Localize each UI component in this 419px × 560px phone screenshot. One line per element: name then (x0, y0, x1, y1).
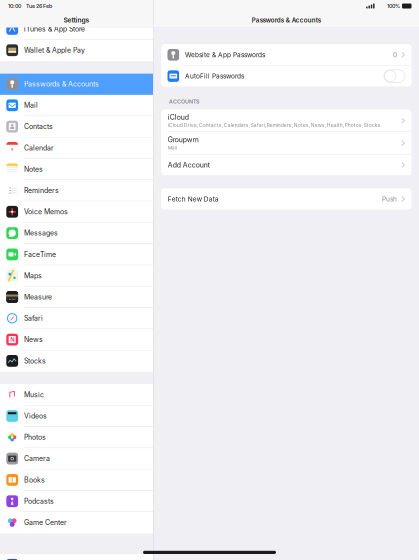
button[interactable]: Game Center (0, 512, 153, 533)
staticText: FaceTime (24, 250, 56, 259)
staticText: Website & App Passwords (185, 51, 265, 59)
button[interactable]: Podcasts (0, 491, 153, 512)
button[interactable]: iTunes & App Store (0, 18, 153, 40)
staticText: Add Account (168, 161, 210, 169)
staticText: Passwords & Accounts (252, 16, 321, 24)
staticText: iCloud Drive, Contacts, Calendars, Safar… (168, 122, 381, 128)
staticText: Messages (24, 229, 58, 237)
staticText: Music (24, 390, 44, 399)
staticText: News (24, 335, 43, 344)
staticText: Photos (24, 433, 46, 441)
staticText: Podcasts (24, 497, 54, 505)
staticText: Game Center (24, 518, 67, 527)
staticText: Fetch New Data (168, 195, 219, 203)
staticText: Videos (24, 412, 47, 420)
staticText: Safari (24, 314, 43, 322)
staticText: Books (24, 476, 45, 484)
staticText: Maps (24, 271, 42, 280)
button[interactable]: Stocks (0, 350, 153, 372)
staticText: Camera (24, 454, 50, 463)
staticText: Push (382, 195, 397, 203)
staticText: iCloud (168, 113, 189, 121)
staticText: Mail (24, 101, 38, 109)
staticText: 4 (11, 147, 14, 152)
staticText: Groupwm (168, 135, 199, 144)
staticText: N (10, 336, 14, 343)
staticText: Settings (63, 16, 89, 24)
staticText: Passwords & Accounts (24, 80, 99, 88)
button[interactable]: 4 (0, 137, 153, 159)
staticText: Calendar (24, 144, 54, 152)
staticText: Measure (24, 293, 52, 301)
staticText: Wallet & Apple Pay (24, 46, 85, 54)
staticText: 100% (387, 3, 400, 9)
staticText: Tue 26 Feb (26, 3, 52, 9)
button[interactable]: Mail (0, 95, 153, 116)
staticText: Mail (168, 145, 177, 151)
button[interactable]: Camera (0, 448, 153, 469)
button[interactable]: Add Account (161, 155, 411, 175)
button[interactable]: Measure (0, 287, 153, 308)
button[interactable]: Groupwm (161, 132, 411, 154)
button[interactable]: Safari (0, 308, 153, 329)
button[interactable]: Messages (0, 223, 153, 244)
button[interactable]: Books (0, 469, 153, 491)
button[interactable]: FaceTime (0, 244, 153, 265)
button[interactable]: Music (0, 384, 153, 406)
staticText: Reminders (24, 186, 59, 195)
button[interactable]: Voice Memos (0, 201, 153, 223)
staticText: 0 (393, 51, 397, 59)
button[interactable]: Fetch New Data (161, 189, 411, 209)
staticText: Voice Memos (24, 208, 68, 216)
button[interactable]: f (0, 554, 153, 560)
staticText: iTunes & App Store (24, 25, 85, 33)
staticText: Notes (24, 165, 43, 173)
staticText: AutoFill Passwords (185, 72, 244, 80)
button[interactable]: Photos (0, 427, 153, 448)
button[interactable]: Passwords & Accounts (0, 74, 153, 95)
button[interactable]: Maps (0, 265, 153, 287)
button[interactable]: iCloud (161, 110, 411, 132)
staticText: Contacts (24, 122, 53, 131)
button[interactable]: Website & App Passwords (161, 44, 411, 65)
button[interactable]: Reminders (0, 180, 153, 201)
button[interactable]: Videos (0, 406, 153, 427)
button[interactable]: AutoFill Passwords (161, 66, 411, 86)
staticText: Stocks (24, 357, 46, 365)
button[interactable]: N (0, 329, 153, 350)
staticText: ACCOUNTS (169, 98, 199, 105)
button[interactable]: Notes (0, 159, 153, 180)
staticText: 10:00 (8, 3, 21, 9)
button[interactable]: Wallet & Apple Pay (0, 40, 153, 61)
button[interactable]: Contacts (0, 116, 153, 137)
